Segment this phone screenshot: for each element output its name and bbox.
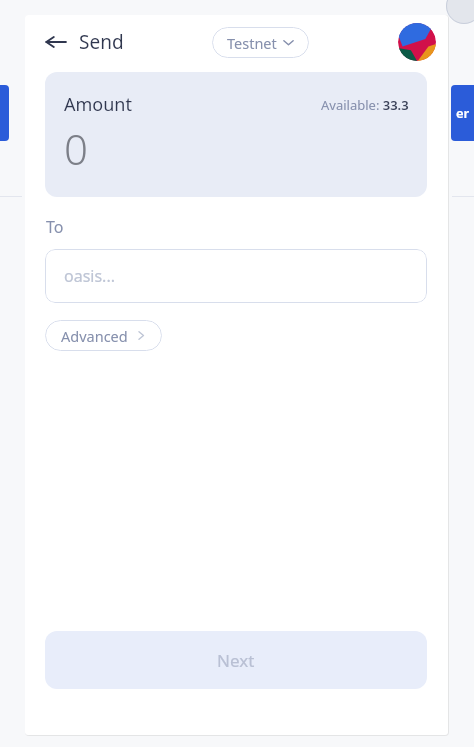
staticText: Advanced — [61, 326, 128, 346]
staticText: Available: 33.3 — [321, 96, 409, 114]
button[interactable]: Testnet — [212, 27, 309, 58]
staticText: Send — [79, 29, 124, 55]
staticText: oasis... — [64, 265, 115, 287]
button[interactable]: Back — [39, 25, 73, 59]
staticText: 0 — [64, 120, 88, 177]
staticText: Amount — [64, 92, 132, 117]
button[interactable]: Advanced — [45, 320, 162, 351]
staticText: Testnet — [227, 33, 277, 53]
button[interactable]: oasis... — [45, 249, 427, 303]
staticText: er — [456, 104, 470, 122]
button[interactable]: Account — [398, 23, 436, 61]
staticText: Next — [217, 649, 255, 672]
button[interactable]: Next — [45, 631, 427, 689]
button[interactable]: Amount — [45, 72, 427, 197]
staticText: To — [46, 216, 64, 238]
